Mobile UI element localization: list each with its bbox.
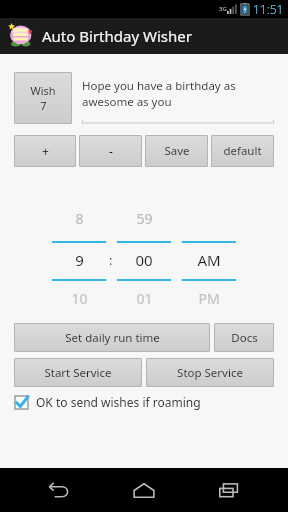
button[interactable]: 01 [122,289,166,308]
button[interactable]: AM [187,250,231,270]
button[interactable]: 9 [57,250,101,270]
staticText: + [42,143,49,159]
staticText: PM [198,289,220,308]
button[interactable]: Stop Service [146,358,274,387]
staticText: Stop Service [177,365,243,381]
staticText: 00 [135,250,153,270]
button[interactable]: Recent apps [203,468,255,512]
button[interactable]: Start Service [14,358,142,387]
button[interactable]: default [211,135,274,167]
staticText: Auto Birthday Wisher [42,26,192,46]
staticText: Save [164,143,190,159]
staticText: Start Service [44,365,112,381]
button[interactable]: PM [187,289,231,308]
button[interactable]: Back [33,468,85,512]
staticText: 01 [136,289,153,308]
staticText: - [109,143,113,159]
staticText: 59 [136,209,153,228]
staticText: Docs [231,330,258,346]
staticText: : [109,251,113,269]
staticText: Wish [30,83,56,98]
button[interactable]: + [14,135,76,167]
button[interactable]: Home [118,468,170,512]
button[interactable]: Save [145,135,208,167]
button[interactable]: - [79,135,142,167]
button[interactable]: 8 [57,209,101,228]
button[interactable]: OK to send wishes if roaming [14,394,201,410]
button[interactable]: Docs [214,323,274,352]
staticText: 9 [75,250,84,270]
staticText: default [223,143,262,159]
button[interactable]: 59 [122,209,166,228]
staticText: 11:51 [253,1,284,17]
staticText: Hope you have a birthday as awesome as y… [82,78,274,109]
button[interactable]: 00 [122,250,166,270]
staticText: Set daily run time [65,330,160,346]
button[interactable]: 10 [57,289,101,308]
button[interactable]: Wish [14,72,72,124]
staticText: OK to send wishes if roaming [36,394,201,410]
staticText: 3G [219,5,227,13]
staticText: 10 [71,289,88,308]
staticText: 7 [40,98,47,113]
staticText: 8 [75,209,84,228]
button[interactable]: Set daily run time [14,323,210,352]
staticText: AM [197,250,221,270]
